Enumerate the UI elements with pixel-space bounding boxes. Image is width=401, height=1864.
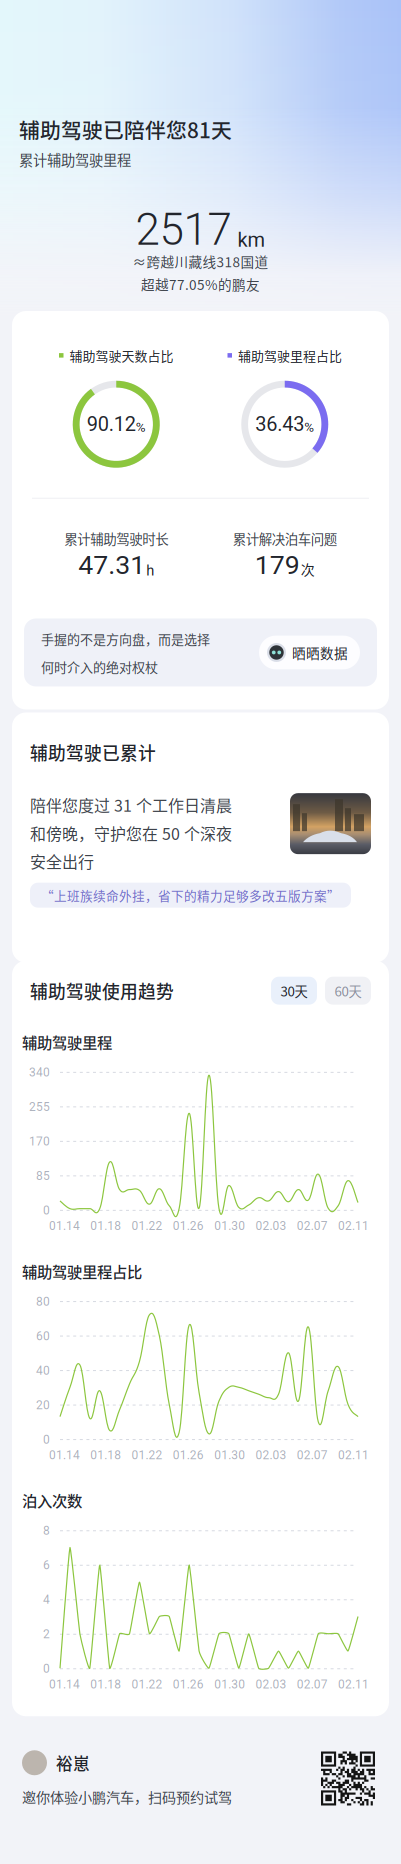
staticText: 255 (29, 1100, 50, 1114)
staticText: 02.11 (338, 1677, 369, 1691)
staticText: 01.30 (214, 1677, 245, 1691)
staticText: 2517 (135, 204, 231, 256)
staticText: 次 (301, 559, 315, 579)
staticText: ≈跨越川藏线318国道 (132, 252, 268, 271)
staticText: 4 (43, 1593, 50, 1607)
staticText: 01.18 (90, 1677, 121, 1691)
staticText: % (304, 419, 314, 435)
staticText: 01.14 (49, 1677, 80, 1691)
staticText: 陪伴您度过 31 个工作日清晨 (30, 793, 232, 816)
staticText: 90.12 (87, 412, 136, 436)
staticText: 02.07 (297, 1677, 328, 1691)
staticText: 辅助驾驶里程 (22, 1031, 112, 1053)
staticText: 0 (43, 1432, 50, 1447)
staticText: 40 (36, 1363, 50, 1378)
staticText: km (237, 228, 265, 251)
staticText: 01.18 (90, 1219, 121, 1233)
staticText: 辅助驾驶已累计 (30, 739, 156, 765)
staticText: 02.03 (255, 1219, 286, 1233)
staticText: 01.30 (214, 1219, 245, 1233)
staticText: 和傍晚，守护您在 50 个深夜 (30, 821, 232, 844)
staticText: 辅助驾驶天数占比 (69, 346, 173, 365)
staticText: 邀你体验小鹏汽车，扫码预约试驾 (22, 1786, 232, 1807)
staticText: 02.07 (297, 1448, 328, 1462)
staticText: 01.26 (173, 1219, 204, 1233)
staticText: 0 (43, 1662, 50, 1676)
staticText: 0 (43, 1203, 50, 1217)
staticText: 01.14 (49, 1219, 80, 1233)
staticText: 01.22 (132, 1677, 163, 1691)
staticText: 01.26 (173, 1448, 204, 1462)
staticText: 2 (43, 1627, 50, 1641)
staticText: 36.43 (255, 412, 304, 436)
staticText: 60天 (334, 981, 361, 1000)
staticText: 85 (36, 1169, 50, 1183)
staticText: 超越77.05%的鹏友 (141, 274, 260, 294)
staticText: 02.11 (338, 1219, 369, 1233)
staticText: 01.30 (214, 1448, 245, 1462)
staticText: 累计辅助驾驶时长 (64, 529, 168, 548)
staticText: 60 (36, 1329, 50, 1343)
staticText: 02.07 (297, 1219, 328, 1233)
staticText: “上班族续命外挂，省下的精力足够多改五版方案” (41, 886, 340, 904)
staticText: 47.31 (78, 549, 145, 580)
staticText: 01.14 (49, 1448, 80, 1462)
staticText: 辅助驾驶使用趋势 (30, 978, 174, 1003)
staticText: 01.18 (90, 1448, 121, 1462)
staticText: 晒晒数据 (292, 643, 348, 662)
staticText: 累计解决泊车问题 (233, 529, 337, 548)
button[interactable]: 晒晒数据 (259, 636, 360, 669)
staticText: 裕崽 (56, 1751, 90, 1775)
staticText: h (146, 562, 154, 579)
button[interactable]: 60天 (325, 977, 371, 1005)
staticText: 02.11 (338, 1448, 369, 1462)
staticText: 8 (43, 1524, 50, 1538)
staticText: 安全出行 (30, 849, 94, 873)
button[interactable]: 30天 (271, 977, 317, 1005)
staticText: 辅助驾驶里程占比 (238, 346, 342, 365)
staticText: 170 (29, 1134, 50, 1148)
staticText: 80 (36, 1294, 50, 1309)
staticText: 辅助驾驶里程占比 (22, 1260, 142, 1282)
staticText: 179 (255, 549, 300, 580)
staticText: 手握的不是方向盘，而是选择 (41, 629, 210, 648)
staticText: 20 (36, 1398, 50, 1412)
staticText: 辅助驾驶已陪伴您81天 (19, 114, 232, 144)
staticText: 何时介入的绝对权杖 (41, 657, 158, 676)
staticText: % (136, 419, 146, 435)
staticText: 01.22 (132, 1219, 163, 1233)
staticText: 02.03 (255, 1677, 286, 1691)
staticText: 6 (43, 1558, 50, 1572)
staticText: 01.22 (132, 1448, 163, 1462)
staticText: 泊入次数 (22, 1489, 82, 1511)
staticText: 340 (29, 1065, 50, 1079)
staticText: 30天 (280, 981, 307, 1000)
staticText: 02.03 (255, 1448, 286, 1462)
staticText: 累计辅助驾驶里程 (19, 149, 131, 170)
staticText: 01.26 (173, 1677, 204, 1691)
